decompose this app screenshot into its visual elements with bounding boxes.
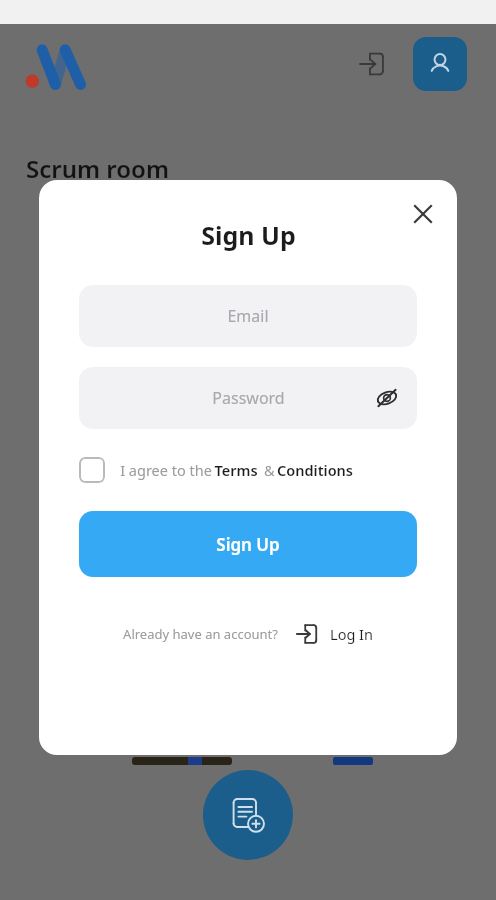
staticText: & — [258, 460, 277, 480]
staticText: Sign Up — [216, 533, 280, 556]
button[interactable]: New note — [203, 770, 293, 860]
staticText: Already have an account? — [123, 625, 278, 643]
staticText: Email — [227, 305, 269, 327]
button[interactable]: Email — [79, 285, 417, 347]
staticText: Scrum room — [26, 152, 169, 185]
staticText: Conditions — [277, 460, 353, 480]
staticText: I agree to the — [118, 460, 214, 480]
button[interactable]: Close — [403, 194, 443, 234]
staticText: Sign Up — [201, 218, 296, 252]
button[interactable]: Profile — [413, 37, 467, 91]
staticText: Log In — [330, 624, 373, 644]
staticText: Password — [212, 387, 285, 409]
button[interactable]: I agree to the — [79, 457, 417, 483]
button[interactable]: Sign Up — [79, 511, 417, 577]
button[interactable]: Password — [79, 367, 417, 429]
button[interactable]: Show password — [369, 380, 405, 416]
staticText: Terms — [214, 460, 258, 480]
button[interactable]: Log out — [352, 44, 392, 84]
button[interactable]: Log In — [296, 623, 373, 645]
